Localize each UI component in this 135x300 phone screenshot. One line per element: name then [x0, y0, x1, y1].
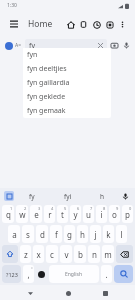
button[interactable]: , [23, 265, 34, 283]
button[interactable]: More options [116, 18, 129, 31]
button[interactable]: Home [61, 286, 75, 300]
button[interactable]: q [2, 205, 14, 223]
staticText: c [50, 249, 54, 260]
staticText: n [92, 249, 97, 260]
button[interactable]: Site info [3, 40, 14, 51]
button[interactable]: fyn deeltjies [23, 62, 111, 76]
button[interactable]: Back [23, 286, 37, 300]
button[interactable]: Home [64, 18, 77, 31]
button[interactable]: o [109, 205, 120, 223]
staticText: 8 [103, 206, 106, 211]
staticText: fy [29, 192, 35, 201]
button[interactable]: r [44, 205, 55, 223]
staticText: 7 [90, 206, 93, 211]
staticText: 4 [51, 206, 54, 211]
button[interactable]: fy [14, 188, 50, 204]
button[interactable]: Clear [96, 41, 105, 50]
staticText: y [73, 209, 78, 220]
staticText: fyn gaillardia [27, 78, 70, 88]
button[interactable]: Clipboard [4, 191, 14, 201]
staticText: f [55, 229, 58, 240]
button[interactable]: fyn gaillardia [23, 76, 111, 90]
button[interactable]: h [77, 225, 88, 243]
button[interactable]: l [116, 225, 127, 243]
button[interactable]: y [70, 205, 81, 223]
button[interactable]: t [57, 205, 68, 223]
staticText: g [67, 229, 72, 240]
button[interactable]: Recents [98, 286, 112, 300]
button[interactable]: e [30, 205, 42, 223]
staticText: z [24, 249, 28, 260]
staticText: e [34, 209, 39, 220]
button[interactable]: Shift [2, 245, 18, 263]
button[interactable]: Voice input [120, 191, 131, 202]
button[interactable]: u [83, 205, 94, 223]
button[interactable]: Backspace [116, 245, 133, 263]
staticText: w [19, 209, 26, 220]
staticText: j [94, 229, 97, 240]
staticText: ° [31, 266, 33, 271]
staticText: fyn gemaak [27, 106, 66, 116]
staticText: i [100, 209, 103, 220]
staticText: u [86, 209, 91, 220]
button[interactable]: . [101, 265, 112, 283]
staticText: 2 [24, 206, 27, 211]
staticText: fyi [64, 192, 72, 201]
button[interactable]: f [50, 225, 62, 243]
staticText: t [61, 209, 64, 220]
button[interactable]: b [74, 245, 86, 263]
button[interactable]: i [96, 205, 107, 223]
staticText: 9 [116, 206, 119, 211]
button[interactable]: p [122, 205, 133, 223]
staticText: r [48, 209, 52, 220]
staticText: q [6, 209, 11, 220]
button[interactable]: Bookmarks [77, 18, 90, 31]
button[interactable]: s [22, 225, 34, 243]
button[interactable]: Emoji [36, 265, 47, 283]
button[interactable]: Search by image [109, 40, 120, 51]
button[interactable]: Voice search [121, 40, 132, 51]
button[interactable]: Menu [6, 16, 22, 32]
staticText: a [12, 229, 17, 240]
button[interactable]: fyn gemaak [23, 104, 111, 118]
staticText: m [104, 249, 112, 260]
button[interactable]: d [36, 225, 48, 243]
button[interactable]: English [49, 265, 99, 283]
button[interactable]: v [60, 245, 72, 263]
button[interactable]: fy [25, 39, 107, 52]
button[interactable]: Tabs [103, 18, 116, 31]
staticText: 6 [77, 206, 80, 211]
staticText: fyn [27, 50, 38, 60]
staticText: h [80, 229, 85, 240]
button[interactable]: w [16, 205, 28, 223]
staticText: k [106, 229, 111, 240]
staticText: d [40, 229, 45, 240]
button[interactable]: n [88, 245, 100, 263]
button[interactable]: History [90, 18, 103, 31]
button[interactable]: fyi [50, 188, 85, 204]
button[interactable]: a [8, 225, 20, 243]
button[interactable]: k [103, 225, 114, 243]
button[interactable]: m [102, 245, 114, 263]
button[interactable]: j [90, 225, 101, 243]
button[interactable]: ?123 [2, 265, 21, 283]
button[interactable]: h [85, 188, 120, 204]
button[interactable]: g [64, 225, 75, 243]
button[interactable]: x [33, 245, 44, 263]
staticText: 5 [64, 206, 67, 211]
staticText: . [105, 269, 108, 280]
button[interactable]: c [46, 245, 58, 263]
staticText: Home [28, 18, 53, 30]
button[interactable]: Search [114, 265, 133, 283]
staticText: l [120, 229, 123, 240]
staticText: fyn geklede [27, 92, 66, 102]
staticText: fy [29, 41, 35, 51]
staticText: 1:30 [7, 2, 17, 9]
staticText: x [36, 249, 41, 260]
staticText: English [65, 271, 83, 278]
staticText: o [112, 209, 117, 220]
button[interactable]: z [20, 245, 31, 263]
button[interactable]: fyn [23, 48, 111, 62]
button[interactable]: fyn geklede [23, 90, 111, 104]
staticText: ?123 [6, 271, 18, 278]
